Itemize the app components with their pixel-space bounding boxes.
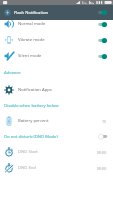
button[interactable] bbox=[98, 52, 109, 61]
staticText: 00:00 bbox=[97, 166, 107, 171]
button[interactable]: Vibrate mode bbox=[0, 32, 113, 48]
staticText: Do not disturb (DND Mode) bbox=[4, 134, 58, 140]
button[interactable]: Notification Apps bbox=[0, 82, 113, 98]
staticText: DND End bbox=[18, 165, 36, 171]
staticText: Vibrate mode bbox=[18, 37, 45, 43]
staticText: Normal mode bbox=[18, 21, 46, 27]
staticText: Battery percent bbox=[18, 118, 49, 124]
staticText: Advance bbox=[4, 70, 21, 76]
staticText: Notification Apps bbox=[18, 87, 52, 93]
other: Toggle flash notification bbox=[98, 8, 109, 17]
staticText: Silent mode bbox=[18, 53, 42, 59]
staticText: 00:00 bbox=[97, 150, 107, 155]
staticText: Flash Notification bbox=[14, 10, 49, 16]
button[interactable]: Silent mode bbox=[0, 48, 113, 64]
staticText: Disable when battery below bbox=[4, 103, 59, 109]
button[interactable]: Battery percent bbox=[0, 113, 113, 129]
button[interactable]: DND Start bbox=[0, 144, 113, 160]
button[interactable] bbox=[98, 36, 109, 45]
button[interactable]: Normal mode bbox=[0, 16, 113, 32]
button[interactable] bbox=[98, 132, 109, 141]
button[interactable] bbox=[98, 20, 109, 29]
staticText: DND Start bbox=[18, 149, 38, 155]
button[interactable] bbox=[98, 8, 109, 17]
staticText: 15 bbox=[102, 119, 107, 124]
button[interactable]: DND End bbox=[0, 160, 113, 176]
